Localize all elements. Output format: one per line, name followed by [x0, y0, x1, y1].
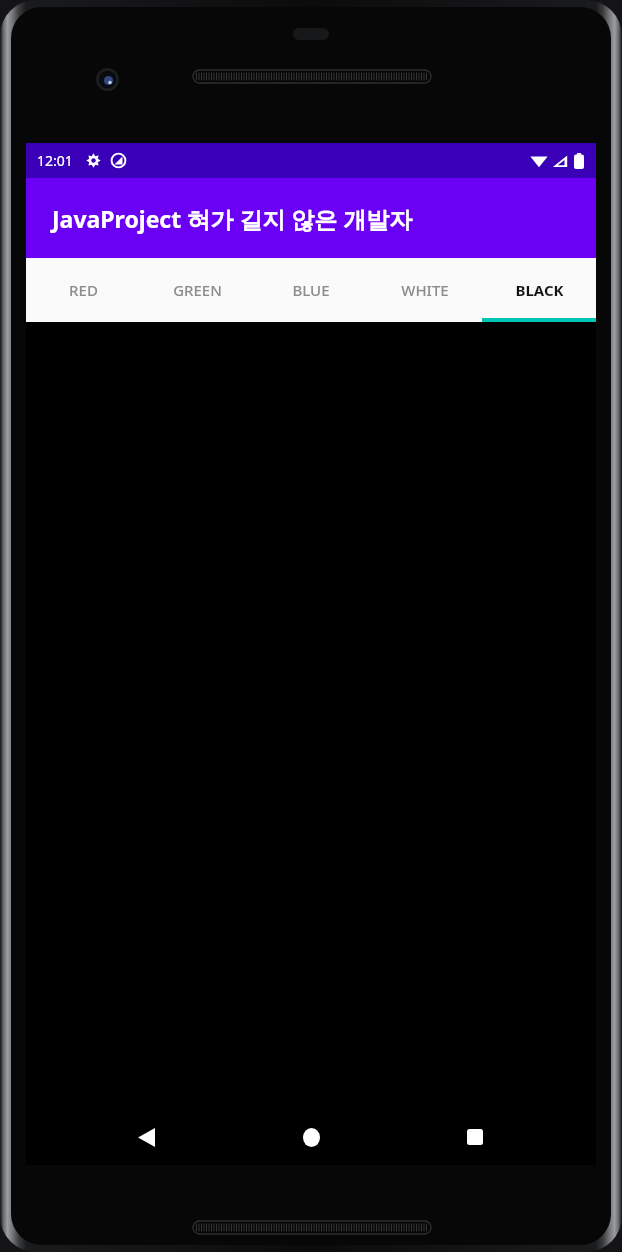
button[interactable]: BLACK: [482, 258, 596, 322]
button[interactable]: WHITE: [368, 258, 482, 322]
staticText: RED: [69, 280, 98, 300]
button[interactable]: Back: [125, 1116, 167, 1158]
button[interactable]: Recent apps: [454, 1116, 496, 1158]
staticText: WHITE: [401, 280, 449, 300]
staticText: BLUE: [292, 280, 330, 300]
staticText: GREEN: [173, 280, 222, 300]
button[interactable]: Home: [290, 1116, 332, 1158]
staticText: JavaProject 혀가 길지 않은 개발자: [52, 203, 413, 234]
button[interactable]: GREEN: [140, 258, 254, 322]
button[interactable]: RED: [26, 258, 140, 322]
staticText: BLACK: [515, 280, 564, 300]
button[interactable]: BLUE: [254, 258, 368, 322]
staticText: 12:01: [37, 151, 73, 170]
